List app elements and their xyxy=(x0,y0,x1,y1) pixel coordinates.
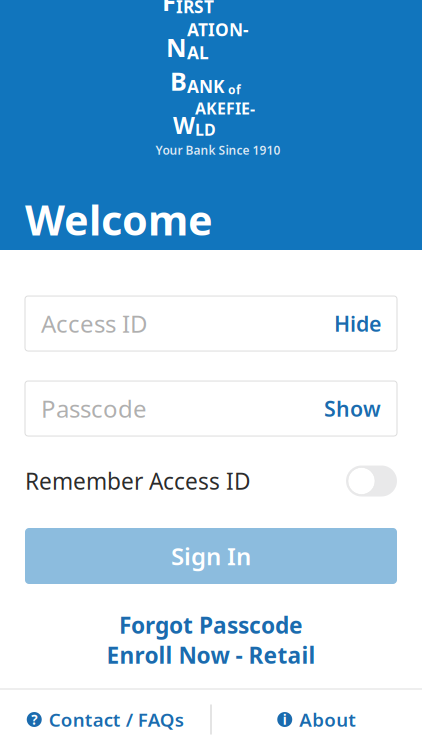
staticText: B xyxy=(170,64,187,98)
button[interactable]: Access ID xyxy=(25,296,397,351)
staticText: AKEFIELD xyxy=(195,98,255,140)
staticText: Contact / FAQs xyxy=(49,707,184,732)
staticText: ATIONAL xyxy=(187,18,249,64)
staticText: Passcode xyxy=(41,393,147,424)
button[interactable]: i xyxy=(211,689,422,749)
staticText: F xyxy=(162,0,176,18)
staticText: Access ID xyxy=(41,308,148,339)
staticText: Sign In xyxy=(171,540,251,572)
button[interactable]: Remember Access ID xyxy=(0,464,422,498)
staticText: Show xyxy=(324,394,381,423)
staticText: About xyxy=(299,707,356,732)
staticText: N xyxy=(166,30,187,64)
staticText: Enroll Now - Retail xyxy=(106,640,315,670)
staticText: Hide xyxy=(334,309,381,338)
staticText: W xyxy=(173,110,195,140)
staticText: Remember Access ID xyxy=(25,466,251,496)
staticText: of xyxy=(225,82,241,98)
staticText: ANK xyxy=(187,75,225,98)
button[interactable]: Passcode xyxy=(25,381,397,436)
button[interactable]: Enroll Now - Retail xyxy=(0,642,422,668)
button[interactable]: ? xyxy=(0,689,210,749)
staticText: Welcome xyxy=(25,192,213,247)
button[interactable]: Sign In xyxy=(25,528,397,584)
staticText: Forgot Passcode xyxy=(119,610,303,640)
staticText: Your Bank Since 1910 xyxy=(155,142,280,158)
button[interactable]: Forgot Passcode xyxy=(0,612,422,638)
staticText: i xyxy=(283,711,287,728)
staticText: IRST xyxy=(176,0,214,18)
staticText: ? xyxy=(31,711,37,728)
